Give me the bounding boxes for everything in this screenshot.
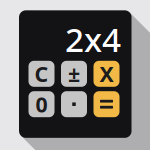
button[interactable]: Equals — [93, 91, 119, 117]
button[interactable]: Toggle sign — [61, 61, 87, 87]
button[interactable]: Clear — [28, 61, 54, 87]
button[interactable]: Decimal point — [61, 91, 87, 117]
staticText: 0 — [35, 90, 47, 118]
staticText: ± — [68, 60, 80, 88]
button[interactable]: Multiply — [93, 61, 119, 87]
staticText: C — [34, 60, 48, 88]
staticText: 2x4 — [65, 17, 121, 61]
button[interactable]: Zero — [28, 91, 54, 117]
staticText: X — [99, 60, 113, 88]
